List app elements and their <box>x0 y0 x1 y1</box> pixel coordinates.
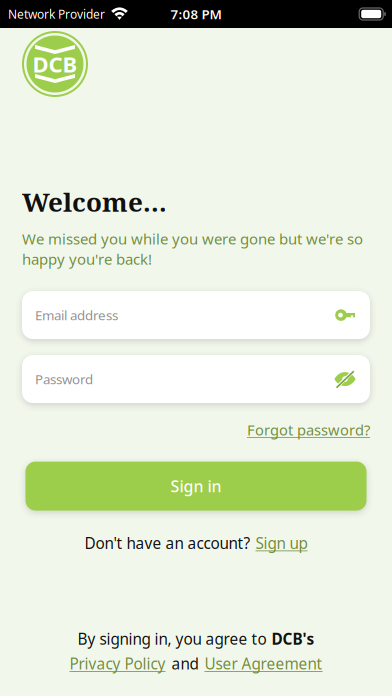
staticText: Privacy Policy <box>69 653 165 674</box>
staticText: Welcome... <box>22 184 167 219</box>
button[interactable]: Sign in <box>25 462 366 511</box>
staticText: We missed you while you were gone but we… <box>22 228 363 269</box>
staticText: DCB <box>32 49 77 79</box>
staticText: Forgot password? <box>247 420 370 440</box>
staticText: Don't have an account? <box>84 533 250 553</box>
staticText: Email address <box>35 306 118 324</box>
button[interactable]: Sign up <box>255 533 307 553</box>
button[interactable]: User Agreement <box>204 653 322 674</box>
button[interactable]: Forgot password? <box>247 420 370 440</box>
staticText: and <box>171 653 198 674</box>
staticText: Sign up <box>255 533 307 553</box>
staticText: Sign in <box>170 475 221 497</box>
staticText: By signing in, you agree to <box>77 628 266 649</box>
button[interactable]: Privacy Policy <box>69 653 165 674</box>
staticText: Password <box>35 370 93 388</box>
staticText: User Agreement <box>204 653 322 674</box>
staticText: 7:08 PM <box>170 5 221 23</box>
staticText: DCB's <box>271 628 314 649</box>
staticText: Network Provider <box>8 6 105 22</box>
